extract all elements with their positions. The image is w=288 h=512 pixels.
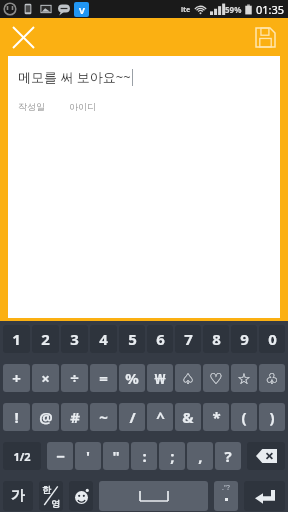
staticText: 작성일 bbox=[18, 101, 45, 112]
staticText: : bbox=[142, 446, 147, 466]
staticText: 한 bbox=[42, 484, 51, 495]
button[interactable]: Enter bbox=[244, 481, 285, 511]
staticText: ÷ bbox=[70, 368, 79, 388]
staticText: 6 bbox=[156, 329, 165, 349]
staticText: = bbox=[99, 368, 108, 388]
button[interactable]: 5 bbox=[119, 325, 145, 353]
button[interactable]: 1/2 bbox=[3, 442, 41, 470]
staticText: & bbox=[182, 407, 194, 427]
staticText: # bbox=[70, 407, 80, 427]
staticText: 가 bbox=[11, 487, 25, 505]
button[interactable]: ) bbox=[259, 403, 285, 431]
staticText: × bbox=[41, 368, 50, 388]
staticText: ; bbox=[170, 446, 175, 466]
staticText: , bbox=[198, 446, 203, 466]
button[interactable]: ♡ bbox=[203, 364, 229, 392]
button[interactable]: ~ bbox=[90, 403, 117, 431]
staticText: ^ bbox=[156, 407, 165, 427]
staticText: 59% bbox=[225, 4, 242, 15]
button[interactable]: ; bbox=[159, 442, 185, 470]
staticText: 01:35 bbox=[256, 2, 285, 17]
button[interactable]: = bbox=[90, 364, 117, 392]
staticText: * bbox=[212, 407, 221, 427]
button[interactable]: * bbox=[203, 403, 229, 431]
staticText: " bbox=[112, 446, 120, 466]
button[interactable]: ! bbox=[3, 403, 30, 431]
button[interactable]: 3 bbox=[61, 325, 88, 353]
button[interactable]: Emoji and settings bbox=[69, 481, 93, 511]
button[interactable]: 가 bbox=[3, 481, 33, 511]
button[interactable]: ? bbox=[215, 442, 241, 470]
button[interactable]: 메모를 써 보아요~~ bbox=[8, 56, 280, 318]
button[interactable]: ÷ bbox=[61, 364, 88, 392]
staticText: 3 bbox=[70, 329, 79, 349]
staticText: − bbox=[56, 446, 65, 466]
staticText: ₩ bbox=[154, 368, 166, 388]
staticText: 8 bbox=[212, 329, 221, 349]
button[interactable]: ( bbox=[231, 403, 257, 431]
button[interactable]: @ bbox=[32, 403, 59, 431]
button[interactable]: # bbox=[61, 403, 88, 431]
button[interactable]: ☆ bbox=[231, 364, 257, 392]
button[interactable]: Korean English toggle bbox=[39, 481, 63, 511]
staticText: 1 bbox=[12, 329, 21, 349]
button[interactable]: + bbox=[3, 364, 30, 392]
button[interactable]: − bbox=[47, 442, 73, 470]
button[interactable]: 1 bbox=[3, 325, 30, 353]
staticText: 9 bbox=[240, 329, 249, 349]
staticText: ) bbox=[269, 407, 275, 427]
button[interactable]: 8 bbox=[203, 325, 229, 353]
button[interactable]: % bbox=[119, 364, 145, 392]
staticText: 메모를 써 보아요~~ bbox=[18, 68, 131, 86]
button[interactable]: ^ bbox=[147, 403, 173, 431]
button[interactable]: & bbox=[175, 403, 201, 431]
button[interactable]: Punctuation bbox=[214, 481, 238, 511]
button[interactable]: × bbox=[32, 364, 59, 392]
button[interactable]: ♧ bbox=[259, 364, 285, 392]
button[interactable]: : bbox=[131, 442, 157, 470]
button[interactable]: " bbox=[103, 442, 129, 470]
staticText: 0 bbox=[268, 329, 277, 349]
staticText: 아이디 bbox=[69, 101, 96, 112]
button[interactable]: Backspace bbox=[247, 442, 285, 470]
staticText: @ bbox=[39, 407, 53, 427]
staticText: 5 bbox=[128, 329, 137, 349]
button[interactable]: / bbox=[119, 403, 145, 431]
staticText: ☆ bbox=[237, 370, 251, 387]
staticText: lte bbox=[181, 5, 191, 15]
staticText: 7 bbox=[184, 329, 193, 349]
staticText: 2 bbox=[41, 329, 50, 349]
button[interactable]: ₩ bbox=[147, 364, 173, 392]
staticText: ."? bbox=[222, 483, 230, 493]
staticText: / bbox=[129, 407, 136, 427]
button[interactable]: 0 bbox=[259, 325, 285, 353]
staticText: ♧ bbox=[265, 370, 279, 387]
staticText: ~ bbox=[99, 407, 108, 427]
staticText: ' bbox=[86, 446, 90, 466]
button[interactable]: 7 bbox=[175, 325, 201, 353]
staticText: 4 bbox=[99, 329, 108, 349]
button[interactable]: 6 bbox=[147, 325, 173, 353]
button[interactable]: Close bbox=[6, 20, 40, 54]
staticText: ( bbox=[241, 407, 247, 427]
button[interactable]: 2 bbox=[32, 325, 59, 353]
staticText: % bbox=[125, 368, 139, 388]
staticText: ♡ bbox=[209, 370, 223, 387]
staticText: + bbox=[12, 368, 21, 388]
button[interactable]: Save bbox=[248, 20, 282, 54]
staticText: ? bbox=[224, 446, 232, 466]
button[interactable]: ♤ bbox=[175, 364, 201, 392]
button[interactable]: Space bbox=[99, 481, 208, 511]
button[interactable]: ' bbox=[75, 442, 101, 470]
staticText: ♤ bbox=[181, 370, 195, 387]
staticText: 영 bbox=[51, 498, 60, 509]
button[interactable]: 4 bbox=[90, 325, 117, 353]
staticText: V bbox=[79, 4, 85, 16]
staticText: ! bbox=[14, 407, 19, 427]
button[interactable]: , bbox=[187, 442, 213, 470]
staticText: 1/2 bbox=[13, 449, 31, 464]
button[interactable]: 9 bbox=[231, 325, 257, 353]
